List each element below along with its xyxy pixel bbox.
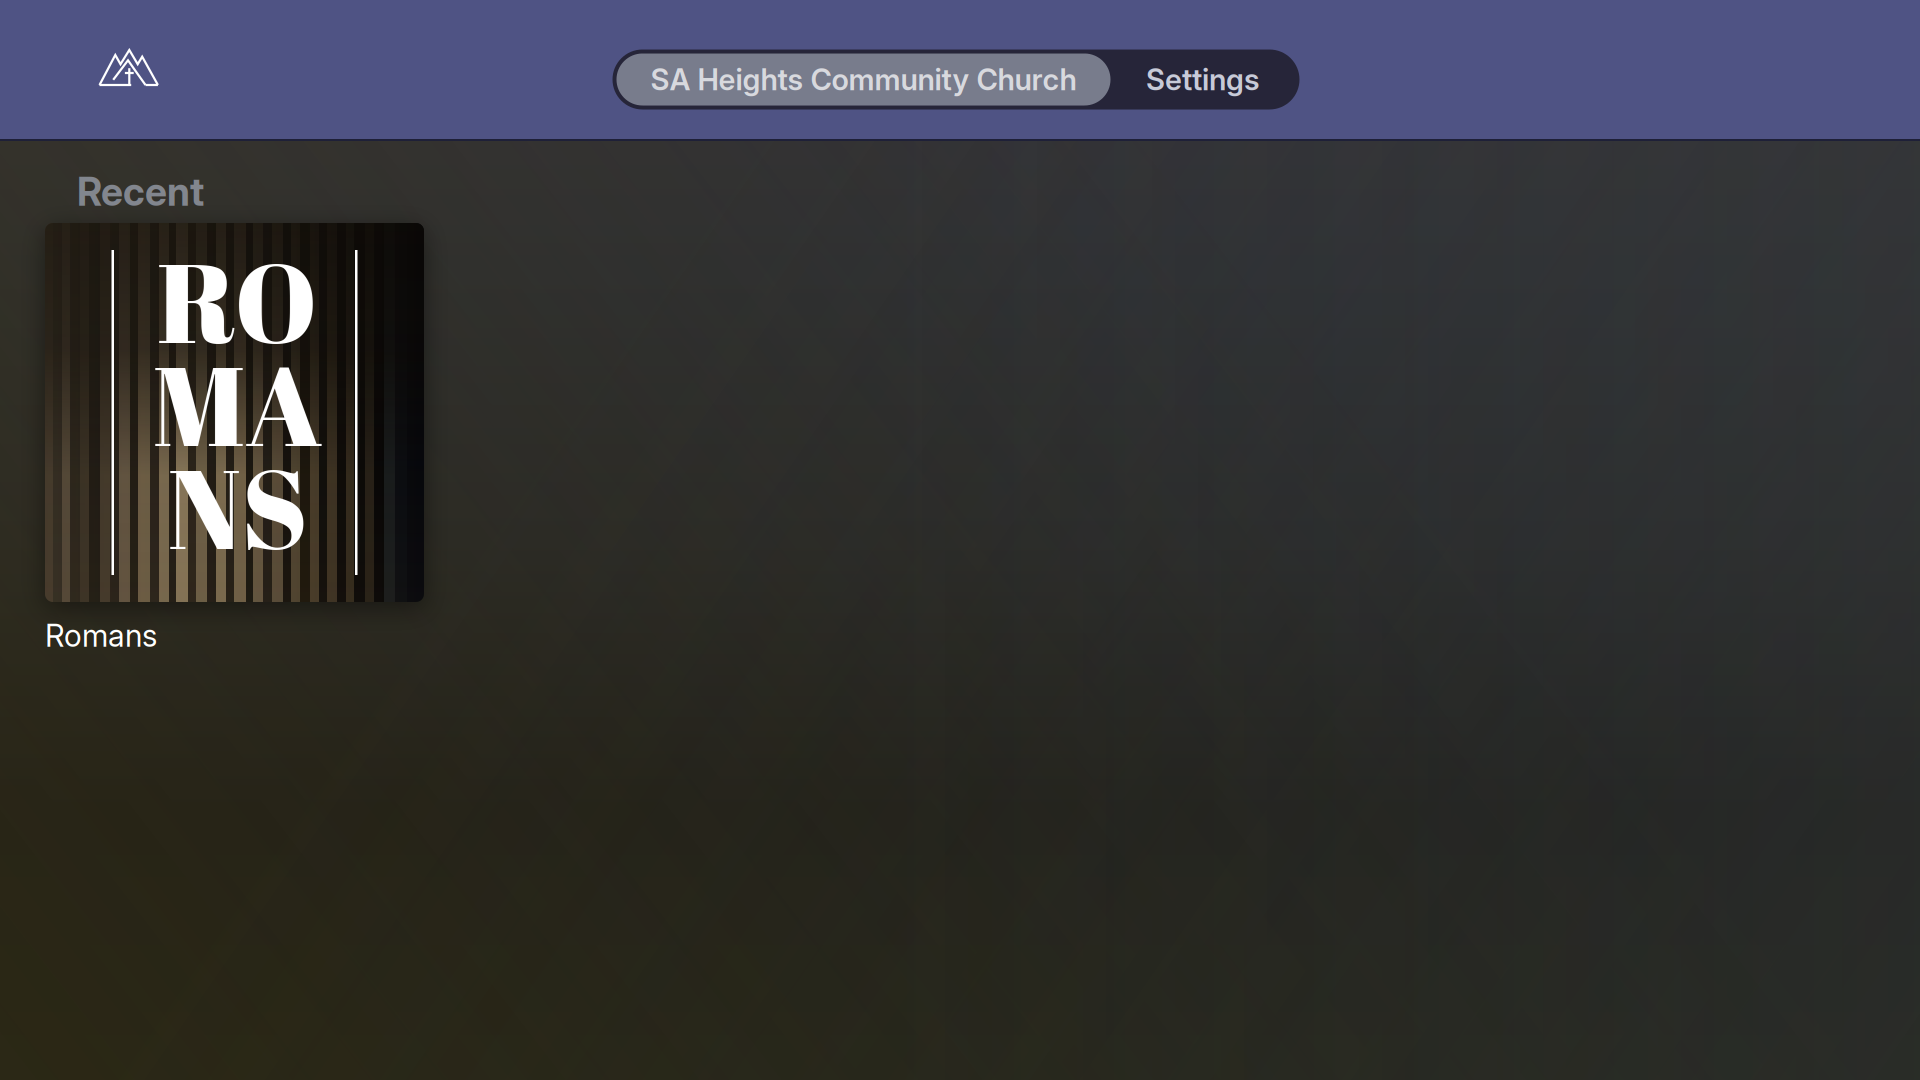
button[interactable]: Settings (1110, 53, 1295, 105)
button[interactable]: Home (0, 0, 256, 139)
button[interactable]: RO (0, 215, 424, 669)
staticText: Romans (45, 617, 157, 654)
staticText: SA Heights Community Church (650, 62, 1076, 97)
staticText: Recent (77, 168, 204, 215)
staticText: RO (157, 226, 317, 375)
button[interactable]: SA Heights Community Church (616, 53, 1110, 105)
staticText: Settings (1146, 62, 1260, 97)
staticText: MA (152, 329, 322, 478)
staticText: NS (167, 432, 307, 581)
